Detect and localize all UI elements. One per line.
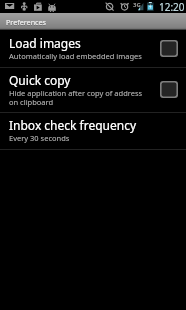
button[interactable]: Toggle Quick copy xyxy=(160,80,178,98)
button[interactable]: Inbox check frequency xyxy=(0,113,186,149)
staticText: Inbox check frequency xyxy=(9,117,137,133)
staticText: Every 30 seconds xyxy=(9,133,70,143)
staticText: Quick copy xyxy=(9,72,71,88)
staticText: Load images xyxy=(9,35,81,51)
staticText: Automatically load embedded images xyxy=(9,51,142,61)
button[interactable]: Quick copy xyxy=(0,68,186,112)
staticText: 3G xyxy=(133,1,141,9)
staticText: Hide application after copy of address o… xyxy=(9,88,150,107)
button[interactable]: Toggle Load images xyxy=(160,39,178,57)
staticText: Preferences xyxy=(6,17,47,27)
staticText: 12:20 xyxy=(159,0,185,13)
button[interactable]: Load images xyxy=(0,30,186,67)
staticText: Preferences xyxy=(6,18,47,28)
button[interactable]: Preferences xyxy=(0,13,186,30)
